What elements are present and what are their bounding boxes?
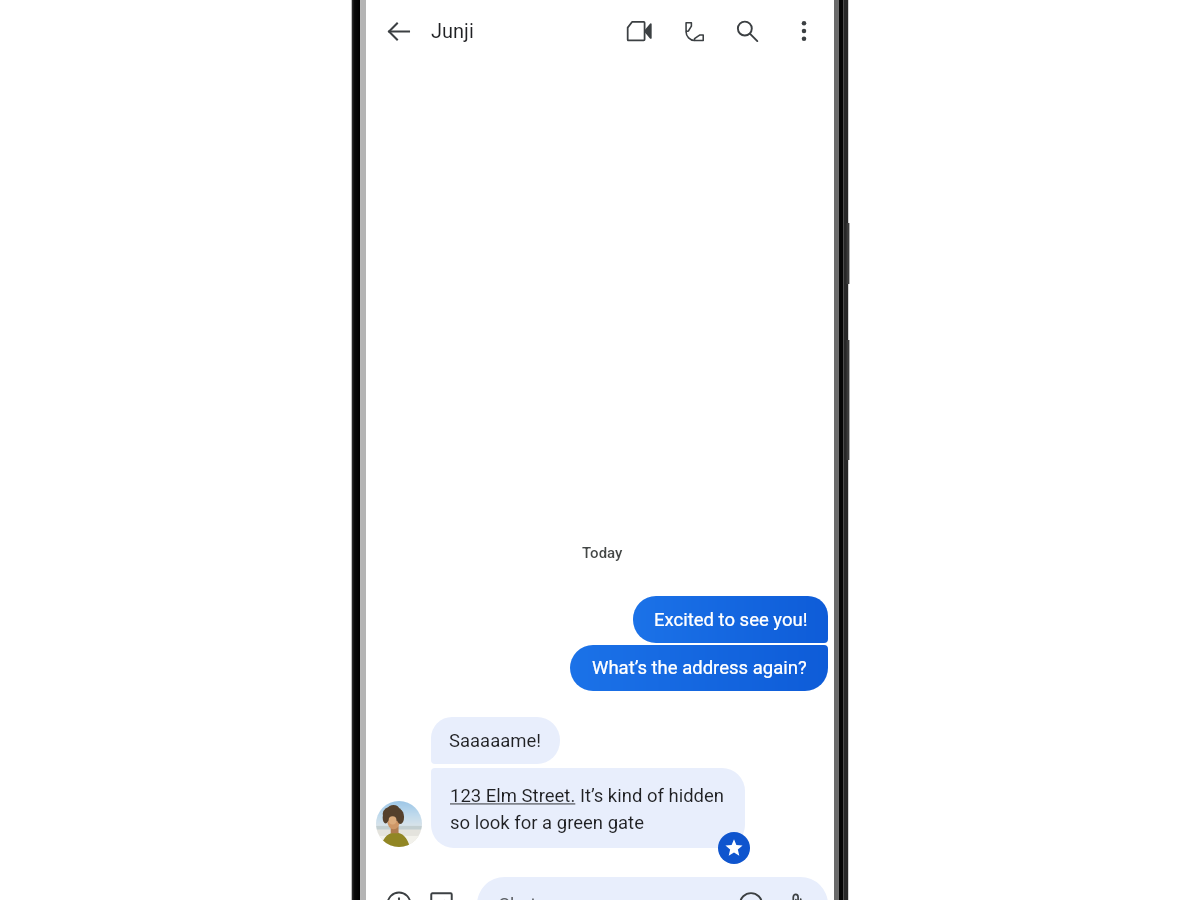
button[interactable]: What’s the address again?: [570, 645, 828, 691]
button[interactable]: Chat: [477, 877, 828, 900]
staticText: 123 Elm Street. It’s kind of hidden so l…: [450, 785, 725, 833]
staticText: Saaaaame!: [449, 730, 542, 752]
staticText: What’s the address again?: [592, 657, 807, 679]
button[interactable]: Search: [725, 9, 769, 53]
staticText: Junji: [431, 19, 474, 42]
button[interactable]: Call: [672, 9, 716, 53]
staticText: Excited to see you!: [654, 609, 808, 631]
button[interactable]: Add: [378, 883, 419, 900]
button[interactable]: Emoji: [730, 883, 771, 900]
button[interactable]: Gallery: [421, 883, 462, 900]
button[interactable]: Saaaaame!: [431, 717, 560, 764]
button[interactable]: Attach: [776, 883, 817, 900]
button[interactable]: Starred: [718, 832, 750, 864]
button[interactable]: Back: [377, 9, 421, 53]
button[interactable]: Excited to see you!: [633, 596, 828, 643]
staticText: Today: [582, 544, 623, 562]
staticText: Chat: [498, 894, 537, 900]
button[interactable]: Video call: [617, 9, 661, 53]
button[interactable]: 123 Elm Street. It’s kind of hidden so l…: [431, 768, 745, 848]
button[interactable]: More options: [782, 9, 826, 53]
